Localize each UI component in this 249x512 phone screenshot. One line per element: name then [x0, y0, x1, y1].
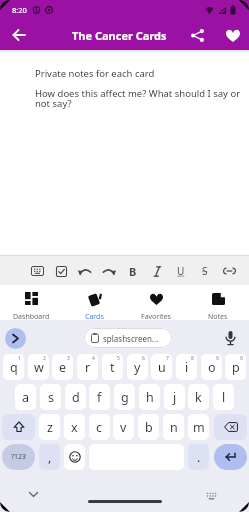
button[interactable]: S [193, 259, 217, 283]
button[interactable]: Cards [63, 285, 125, 320]
button[interactable] [220, 328, 240, 348]
staticText: y [134, 359, 141, 376]
button[interactable] [214, 414, 247, 440]
staticText: 6 [142, 355, 145, 362]
button[interactable] [73, 259, 97, 283]
staticText: o [208, 359, 216, 376]
staticText: x [71, 419, 78, 436]
staticText: q [10, 359, 18, 376]
staticText: s [48, 389, 54, 406]
staticText: d [72, 389, 80, 406]
staticText: r [85, 359, 91, 376]
staticText: 7 [166, 355, 169, 362]
button[interactable]: g [114, 384, 135, 410]
button[interactable] [2, 414, 35, 440]
button[interactable]: a [15, 384, 36, 410]
button[interactable]: U [169, 259, 193, 283]
button[interactable]: j [164, 384, 185, 410]
staticText: k [195, 389, 202, 406]
button[interactable]: r [77, 354, 98, 380]
staticText: j [173, 389, 177, 406]
staticText: z [47, 419, 53, 436]
button[interactable]: d [65, 384, 86, 410]
button[interactable] [186, 24, 208, 46]
staticText: B [129, 264, 137, 279]
staticText: i [185, 359, 189, 376]
staticText: 3 [67, 355, 70, 362]
staticText: e [59, 359, 67, 376]
staticText: b [145, 419, 153, 436]
staticText: f [97, 389, 102, 406]
button[interactable]: f [89, 384, 110, 410]
button[interactable] [7, 23, 31, 47]
button[interactable]: y [127, 354, 148, 380]
button[interactable]: n [163, 414, 184, 440]
staticText: a [22, 389, 30, 406]
staticText: n [170, 419, 178, 436]
button[interactable]: Dashboard [0, 285, 63, 320]
staticText: 4 [92, 355, 95, 362]
staticText: Favorites [141, 312, 171, 320]
button[interactable]: i [176, 354, 197, 380]
button[interactable]: splashscreen... [84, 328, 172, 348]
staticText: Notes [208, 312, 228, 320]
button[interactable]: Notes [187, 285, 249, 320]
button[interactable]: , [39, 444, 60, 470]
button[interactable]: e [52, 354, 73, 380]
staticText: Dashboard [13, 312, 50, 320]
staticText: . [197, 449, 201, 466]
staticText: u [158, 359, 166, 376]
button[interactable]: o [201, 354, 222, 380]
button[interactable]: q [3, 354, 24, 380]
button[interactable] [64, 444, 85, 470]
staticText: 5 [117, 355, 120, 362]
button[interactable]: t [102, 354, 123, 380]
staticText: , [48, 449, 52, 466]
staticText: 2 [43, 355, 46, 362]
staticText: 8 [191, 355, 194, 362]
button[interactable]: b [138, 414, 159, 440]
button[interactable]: x [64, 414, 85, 440]
button[interactable]: u [151, 354, 172, 380]
button[interactable]: m [188, 414, 209, 440]
button[interactable]: w [28, 354, 49, 380]
staticText: Private notes for each card [35, 67, 155, 80]
button[interactable] [222, 24, 244, 46]
button[interactable]: v [113, 414, 134, 440]
button[interactable] [25, 259, 49, 283]
staticText: w [34, 359, 44, 376]
button[interactable] [49, 259, 73, 283]
button[interactable]: ?123 [2, 444, 35, 470]
staticText: p [232, 359, 240, 376]
staticText: c [96, 419, 103, 436]
button[interactable] [5, 328, 26, 349]
staticText: h [146, 389, 154, 406]
button[interactable]: s [40, 384, 61, 410]
staticText: U [177, 264, 185, 278]
staticText: splashscreen... [103, 333, 159, 344]
staticText: The Cancer Cards [72, 28, 167, 43]
button[interactable]: z [39, 414, 60, 440]
button[interactable]: B [121, 259, 145, 283]
button[interactable]: h [139, 384, 160, 410]
staticText: S [202, 264, 208, 278]
button[interactable] [145, 259, 169, 283]
button[interactable]: p [225, 354, 246, 380]
staticText: t [110, 359, 115, 376]
button[interactable] [214, 444, 247, 470]
staticText: How does this affect me? What should I s… [35, 87, 241, 110]
button[interactable]: c [89, 414, 110, 440]
button[interactable] [217, 259, 241, 283]
button[interactable]: k [188, 384, 209, 410]
button[interactable]: l [213, 384, 234, 410]
button[interactable]: Favorites [125, 285, 187, 320]
staticText: m [193, 419, 205, 436]
button[interactable] [97, 259, 121, 283]
staticText: 9 [216, 355, 219, 362]
staticText: v [120, 419, 127, 436]
staticText: Cards [85, 312, 104, 320]
staticText: 0 [240, 355, 243, 362]
button[interactable]: . [188, 444, 209, 470]
staticText: 8:20 [12, 5, 27, 15]
